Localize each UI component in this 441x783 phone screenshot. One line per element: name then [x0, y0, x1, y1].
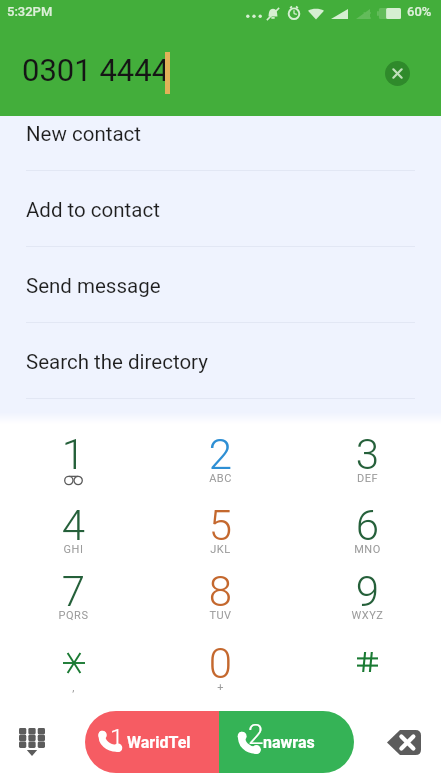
button[interactable]: 7	[0, 562, 147, 630]
staticText: 2	[147, 430, 294, 479]
button[interactable]: 0	[147, 634, 294, 702]
staticText: 2	[248, 718, 264, 751]
button[interactable]: ,	[0, 634, 147, 702]
button[interactable]: Hide dialpad	[4, 713, 59, 771]
button[interactable]: Delete	[375, 717, 433, 767]
button[interactable]: 9	[294, 562, 441, 630]
staticText: 4	[0, 501, 147, 550]
staticText: 5	[147, 501, 294, 550]
button[interactable]: 5	[147, 496, 294, 564]
staticText: Add to contact	[26, 198, 160, 222]
staticText: 1	[110, 724, 124, 752]
staticText: ABC	[147, 472, 294, 485]
staticText: 1	[0, 430, 147, 479]
staticText: 7	[0, 567, 147, 616]
button[interactable]: Add to contact	[0, 171, 441, 247]
staticText: PQRS	[0, 609, 147, 622]
staticText: TUV	[147, 609, 294, 622]
button[interactable]: 6	[294, 496, 441, 564]
staticText: New contact	[26, 122, 142, 146]
staticText: 3	[294, 430, 441, 479]
staticText: MNO	[294, 543, 441, 556]
button[interactable]: New contact	[0, 116, 441, 171]
button[interactable]: 4	[0, 496, 147, 564]
staticText: nawras	[263, 733, 315, 752]
staticText: Send message	[26, 274, 161, 298]
staticText: +	[147, 681, 294, 694]
button[interactable]: 2	[219, 711, 354, 773]
staticText: 0	[147, 639, 294, 688]
staticText: 60%	[407, 4, 432, 19]
staticText: 9	[294, 567, 441, 616]
button[interactable]: 8	[147, 562, 294, 630]
button[interactable]	[294, 634, 441, 702]
staticText: JKL	[147, 543, 294, 556]
staticText: 5:32PM	[7, 4, 53, 19]
button[interactable]: 1	[0, 425, 147, 493]
button[interactable]: 1	[85, 711, 219, 773]
staticText: WaridTel	[127, 733, 191, 752]
staticText: Search the directory	[26, 350, 208, 374]
staticText: 8	[147, 567, 294, 616]
button[interactable]: Send message	[0, 247, 441, 323]
staticText: GHI	[0, 543, 147, 556]
staticText: DEF	[294, 472, 441, 485]
button[interactable]: Clear number	[377, 53, 418, 94]
button[interactable]: Search the directory	[0, 323, 441, 399]
button[interactable]: 3	[294, 425, 441, 493]
staticText: 0301 4444	[22, 52, 170, 88]
staticText: 6	[294, 501, 441, 550]
button[interactable]: 2	[147, 425, 294, 493]
staticText: WXYZ	[294, 609, 441, 622]
